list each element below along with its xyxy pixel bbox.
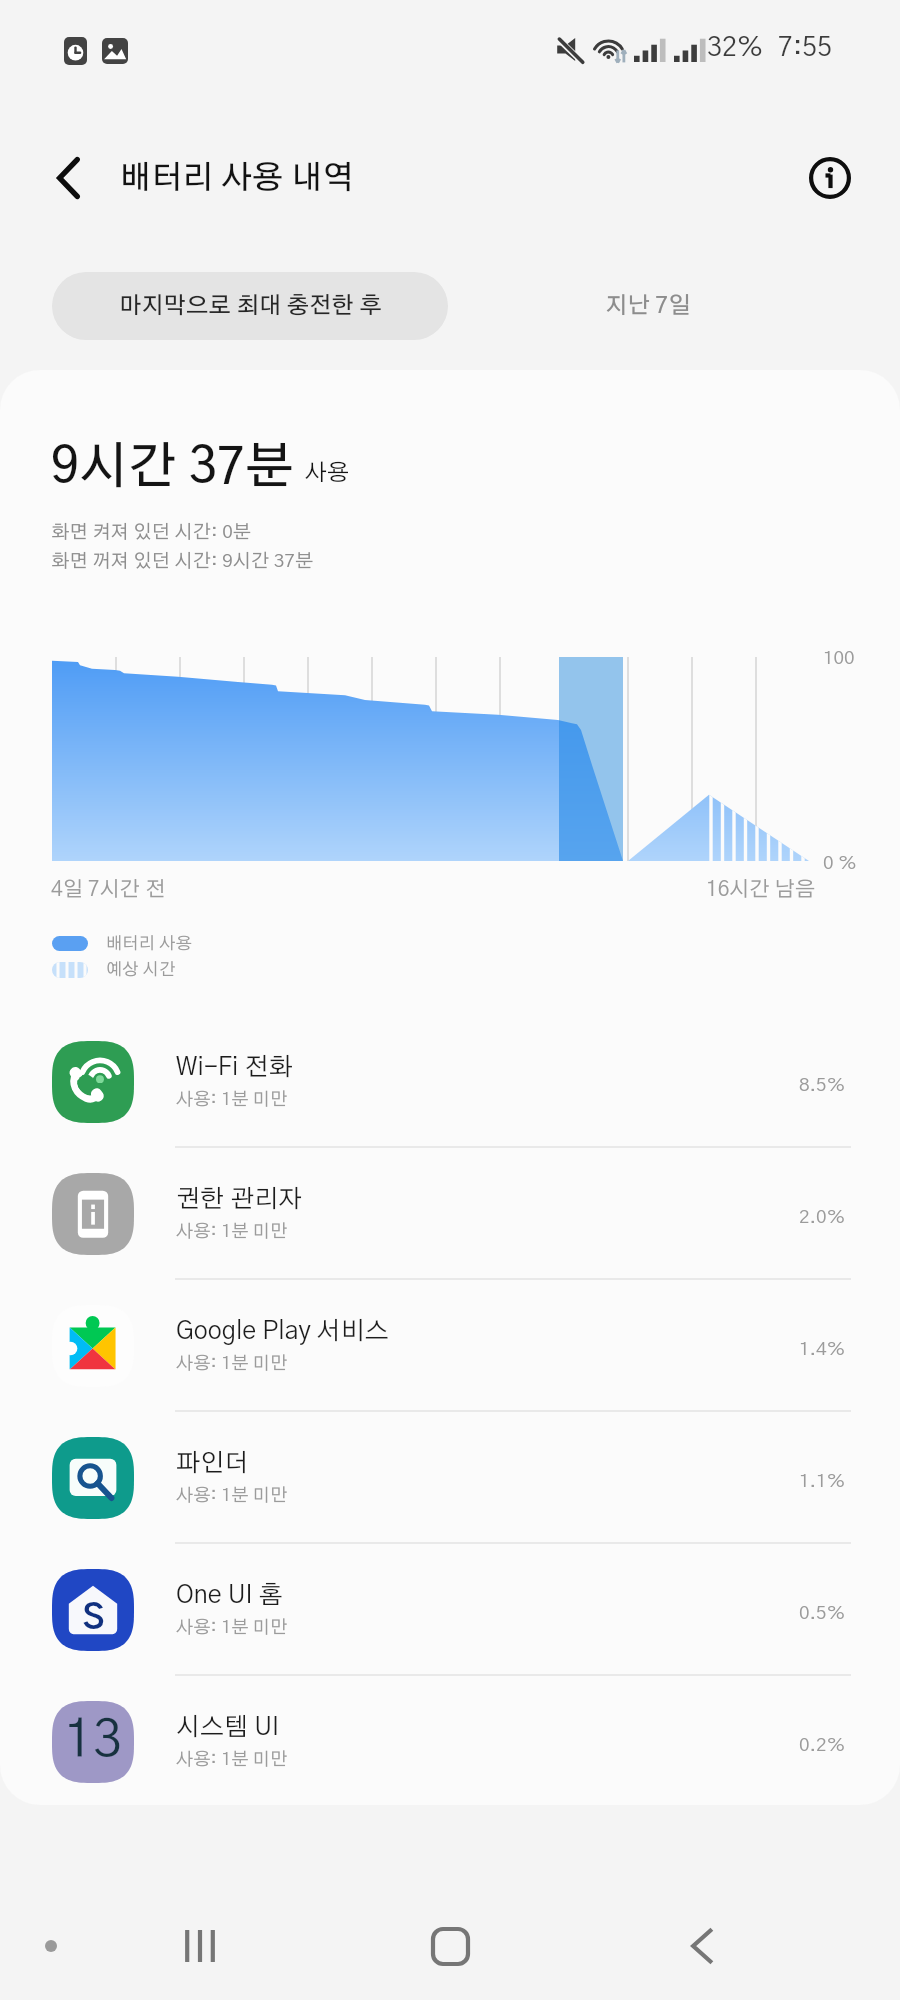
staticText: 0.2% [799, 1736, 846, 1755]
button[interactable]: 지난 7일 [458, 272, 838, 340]
button[interactable]: Recent apps [160, 1906, 240, 1986]
staticText: Google Play 서비스 [176, 1319, 389, 1344]
button[interactable]: S [0, 1544, 900, 1676]
staticText: 사용: 1분 미만 [176, 1355, 288, 1373]
staticText: 파인더 [176, 1451, 249, 1476]
button[interactable]: Wi-Fi 전화 [0, 1016, 900, 1148]
button[interactable]: Back [32, 142, 104, 214]
staticText: 13 [64, 1715, 122, 1767]
button[interactable]: Google Play 서비스 [0, 1280, 900, 1412]
staticText: 사용: 1분 미만 [176, 1751, 288, 1769]
staticText: 0.5% [799, 1604, 846, 1623]
staticText: 배터리 사용 내역 [120, 162, 354, 194]
staticText: 배터리 사용 [106, 935, 192, 952]
button[interactable]: 13 [0, 1676, 900, 1805]
staticText: One UI 홈 [176, 1583, 283, 1608]
staticText: S [83, 1601, 104, 1635]
button[interactable]: Back [662, 1906, 742, 1986]
staticText: 7:55 [778, 34, 833, 61]
staticText: 0 % [823, 854, 857, 873]
staticText: 사용: 1분 미만 [176, 1619, 288, 1637]
staticText: 시스템 UI [176, 1715, 280, 1740]
staticText: 화면 꺼져 있던 시간: 9시간 37분 [51, 552, 314, 571]
staticText: 지난 7일 [605, 295, 691, 318]
staticText: Wi-Fi 전화 [176, 1055, 293, 1080]
button[interactable]: 마지막으로 최대 충전한 후 [52, 272, 448, 340]
staticText: 8.5% [799, 1076, 846, 1095]
staticText: 사용: 1분 미만 [176, 1091, 288, 1109]
staticText: 사용: 1분 미만 [176, 1487, 288, 1505]
staticText: 16시간 남음 [706, 879, 816, 900]
staticText: 9시간 37분 [51, 443, 294, 493]
staticText: 32% [707, 34, 764, 61]
staticText: 1.4% [799, 1340, 846, 1359]
staticText: 2.0% [799, 1208, 846, 1227]
staticText: 1.1% [799, 1472, 846, 1491]
staticText: 마지막으로 최대 충전한 후 [119, 295, 382, 318]
staticText: 권한 관리자 [176, 1187, 303, 1212]
button[interactable]: Home [410, 1906, 490, 1986]
staticText: 사용: 1분 미만 [176, 1223, 288, 1241]
button[interactable]: Information [794, 142, 866, 214]
button[interactable]: 권한 관리자 [0, 1148, 900, 1280]
staticText: 사용 [305, 462, 350, 485]
staticText: 화면 켜져 있던 시간: 0분 [51, 523, 251, 542]
staticText: 4일 7시간 전 [51, 879, 166, 900]
button[interactable]: 파인더 [0, 1412, 900, 1544]
staticText: 예상 시간 [106, 961, 176, 978]
staticText: 100 [823, 649, 855, 668]
